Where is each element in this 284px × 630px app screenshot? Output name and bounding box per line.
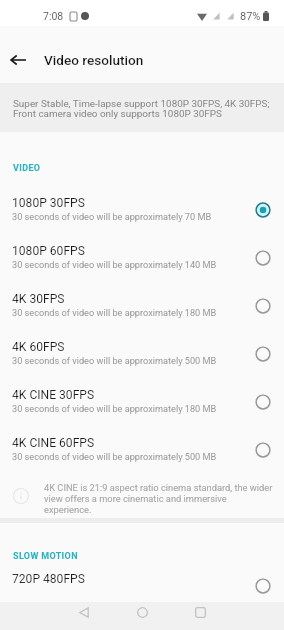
staticText: VIDEO	[13, 163, 41, 174]
staticText: 4K CINE 60FPS	[12, 436, 95, 450]
staticText: 30 seconds of video will be approximatel…	[12, 355, 217, 366]
button[interactable]: Recent apps	[183, 602, 217, 622]
button[interactable]: Home	[125, 602, 159, 622]
staticText: Super Stable, Time-lapse support 1080P 3…	[13, 98, 270, 110]
button[interactable]: 4K CINE 60FPS	[0, 426, 284, 474]
staticText: 4K 60FPS	[12, 340, 65, 354]
staticText: 1080P 60FPS	[12, 244, 85, 258]
button[interactable]: Back	[0, 38, 36, 82]
button[interactable]: 4K 30FPS	[0, 282, 284, 330]
staticText: 30 seconds of video will be approximatel…	[12, 307, 217, 318]
staticText: 30 seconds of video will be approximatel…	[12, 211, 212, 222]
staticText: 4K CINE 30FPS	[12, 388, 95, 402]
button[interactable]: Back	[67, 602, 101, 622]
staticText: 4K 30FPS	[12, 292, 65, 306]
staticText: 720P 480FPS	[12, 572, 85, 586]
staticText: 30 seconds of video will be approximatel…	[12, 259, 217, 270]
staticText: Video resolution	[44, 52, 144, 68]
button[interactable]: 1080P 60FPS	[0, 234, 284, 282]
button[interactable]: 1080P 30FPS	[0, 186, 284, 234]
staticText: SLOW MOTION	[13, 551, 78, 562]
button[interactable]: 4K 60FPS	[0, 330, 284, 378]
staticText: Front camera video only supports 1080P 3…	[13, 108, 222, 120]
staticText: 87%	[240, 10, 261, 23]
staticText: 30 seconds of video will be approximatel…	[12, 403, 217, 414]
staticText: 7:08	[43, 10, 64, 22]
button[interactable]: 4K CINE 30FPS	[0, 378, 284, 426]
staticText: 4K CINE is 21:9 aspect ratio cinema stan…	[44, 482, 273, 515]
button[interactable]: 720P 480FPS	[0, 562, 284, 610]
staticText: 30 seconds of video will be approximatel…	[12, 451, 217, 462]
staticText: 1080P 30FPS	[12, 196, 85, 210]
